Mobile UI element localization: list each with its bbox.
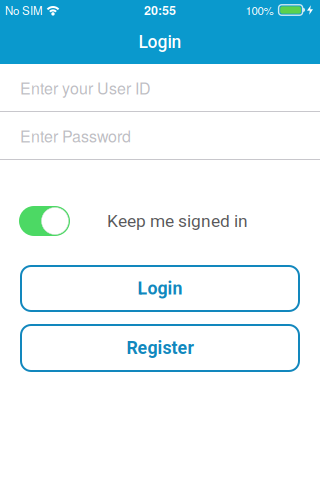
staticText: Keep me signed in bbox=[107, 211, 248, 231]
staticText: 100% bbox=[246, 2, 274, 18]
staticText: Enter Password bbox=[20, 124, 131, 147]
staticText: 20:55 bbox=[144, 1, 176, 19]
staticText: Enter your User ID bbox=[20, 76, 151, 99]
button[interactable]: Enter your User ID bbox=[0, 64, 320, 112]
button[interactable]: Keep me signed in bbox=[19, 206, 70, 236]
staticText: Login bbox=[137, 278, 182, 299]
staticText: Login bbox=[138, 32, 181, 52]
button[interactable]: Register bbox=[20, 324, 300, 372]
staticText: Register bbox=[126, 338, 193, 358]
button[interactable]: Login bbox=[20, 265, 300, 312]
button[interactable]: Enter Password bbox=[0, 112, 320, 160]
staticText: No SIM bbox=[5, 2, 43, 18]
